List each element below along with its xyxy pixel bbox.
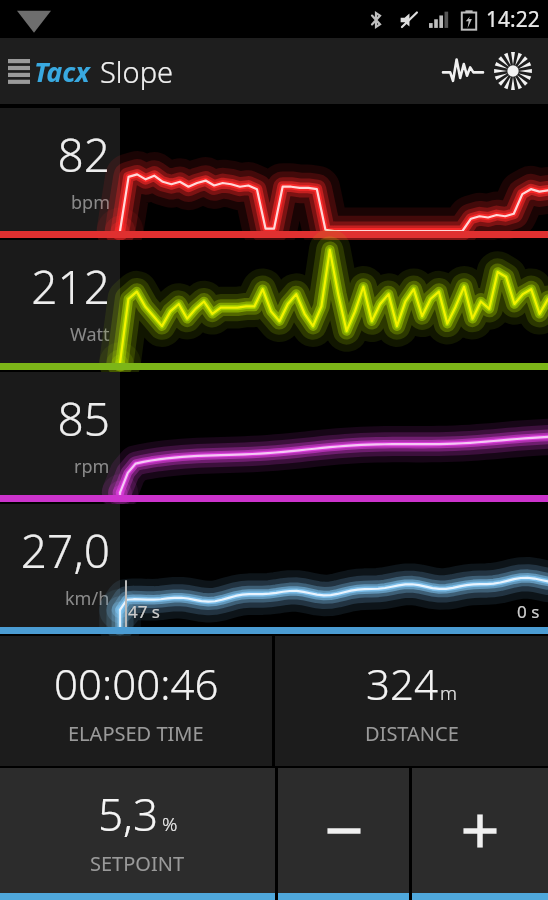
staticText: SETPOINT <box>90 850 185 877</box>
button[interactable]: 82 <box>0 108 548 238</box>
button[interactable]: Settings <box>490 48 536 94</box>
button[interactable]: 85 <box>0 372 548 502</box>
staticText: Slope <box>100 52 174 91</box>
staticText: DISTANCE <box>365 720 459 747</box>
staticText: ELAPSED TIME <box>68 720 204 747</box>
staticText: 324 <box>366 655 438 712</box>
staticText: bpm <box>71 190 110 215</box>
staticText: 0 s <box>517 600 540 623</box>
button[interactable]: 00:00:46 <box>0 636 272 766</box>
staticText: km/h <box>65 586 110 611</box>
staticText: m <box>440 680 457 706</box>
button[interactable]: 27,0 <box>0 504 548 634</box>
staticText: Watt <box>70 322 110 347</box>
button[interactable]: Increase setpoint <box>412 768 548 900</box>
staticText: 5,3 <box>98 784 159 844</box>
button[interactable]: 212 <box>0 240 548 370</box>
staticText: rpm <box>74 454 110 479</box>
staticText: 85 <box>57 387 110 450</box>
other: Menu <box>8 59 30 85</box>
button[interactable]: Heart rate graph <box>440 48 486 94</box>
staticText: 27,0 <box>20 519 110 582</box>
staticText: 47 s <box>128 600 161 623</box>
staticText: Tacx <box>34 53 90 90</box>
staticText: % <box>162 811 178 837</box>
button[interactable]: 5,3 <box>0 768 275 900</box>
staticText: 14:22 <box>486 5 540 34</box>
staticText: 82 <box>57 123 110 186</box>
button[interactable]: Decrease setpoint <box>278 768 409 900</box>
staticText: 212 <box>31 255 110 318</box>
button[interactable]: 324 <box>275 636 548 766</box>
staticText: 00:00:46 <box>54 655 219 712</box>
button[interactable]: Menu <box>6 52 176 91</box>
